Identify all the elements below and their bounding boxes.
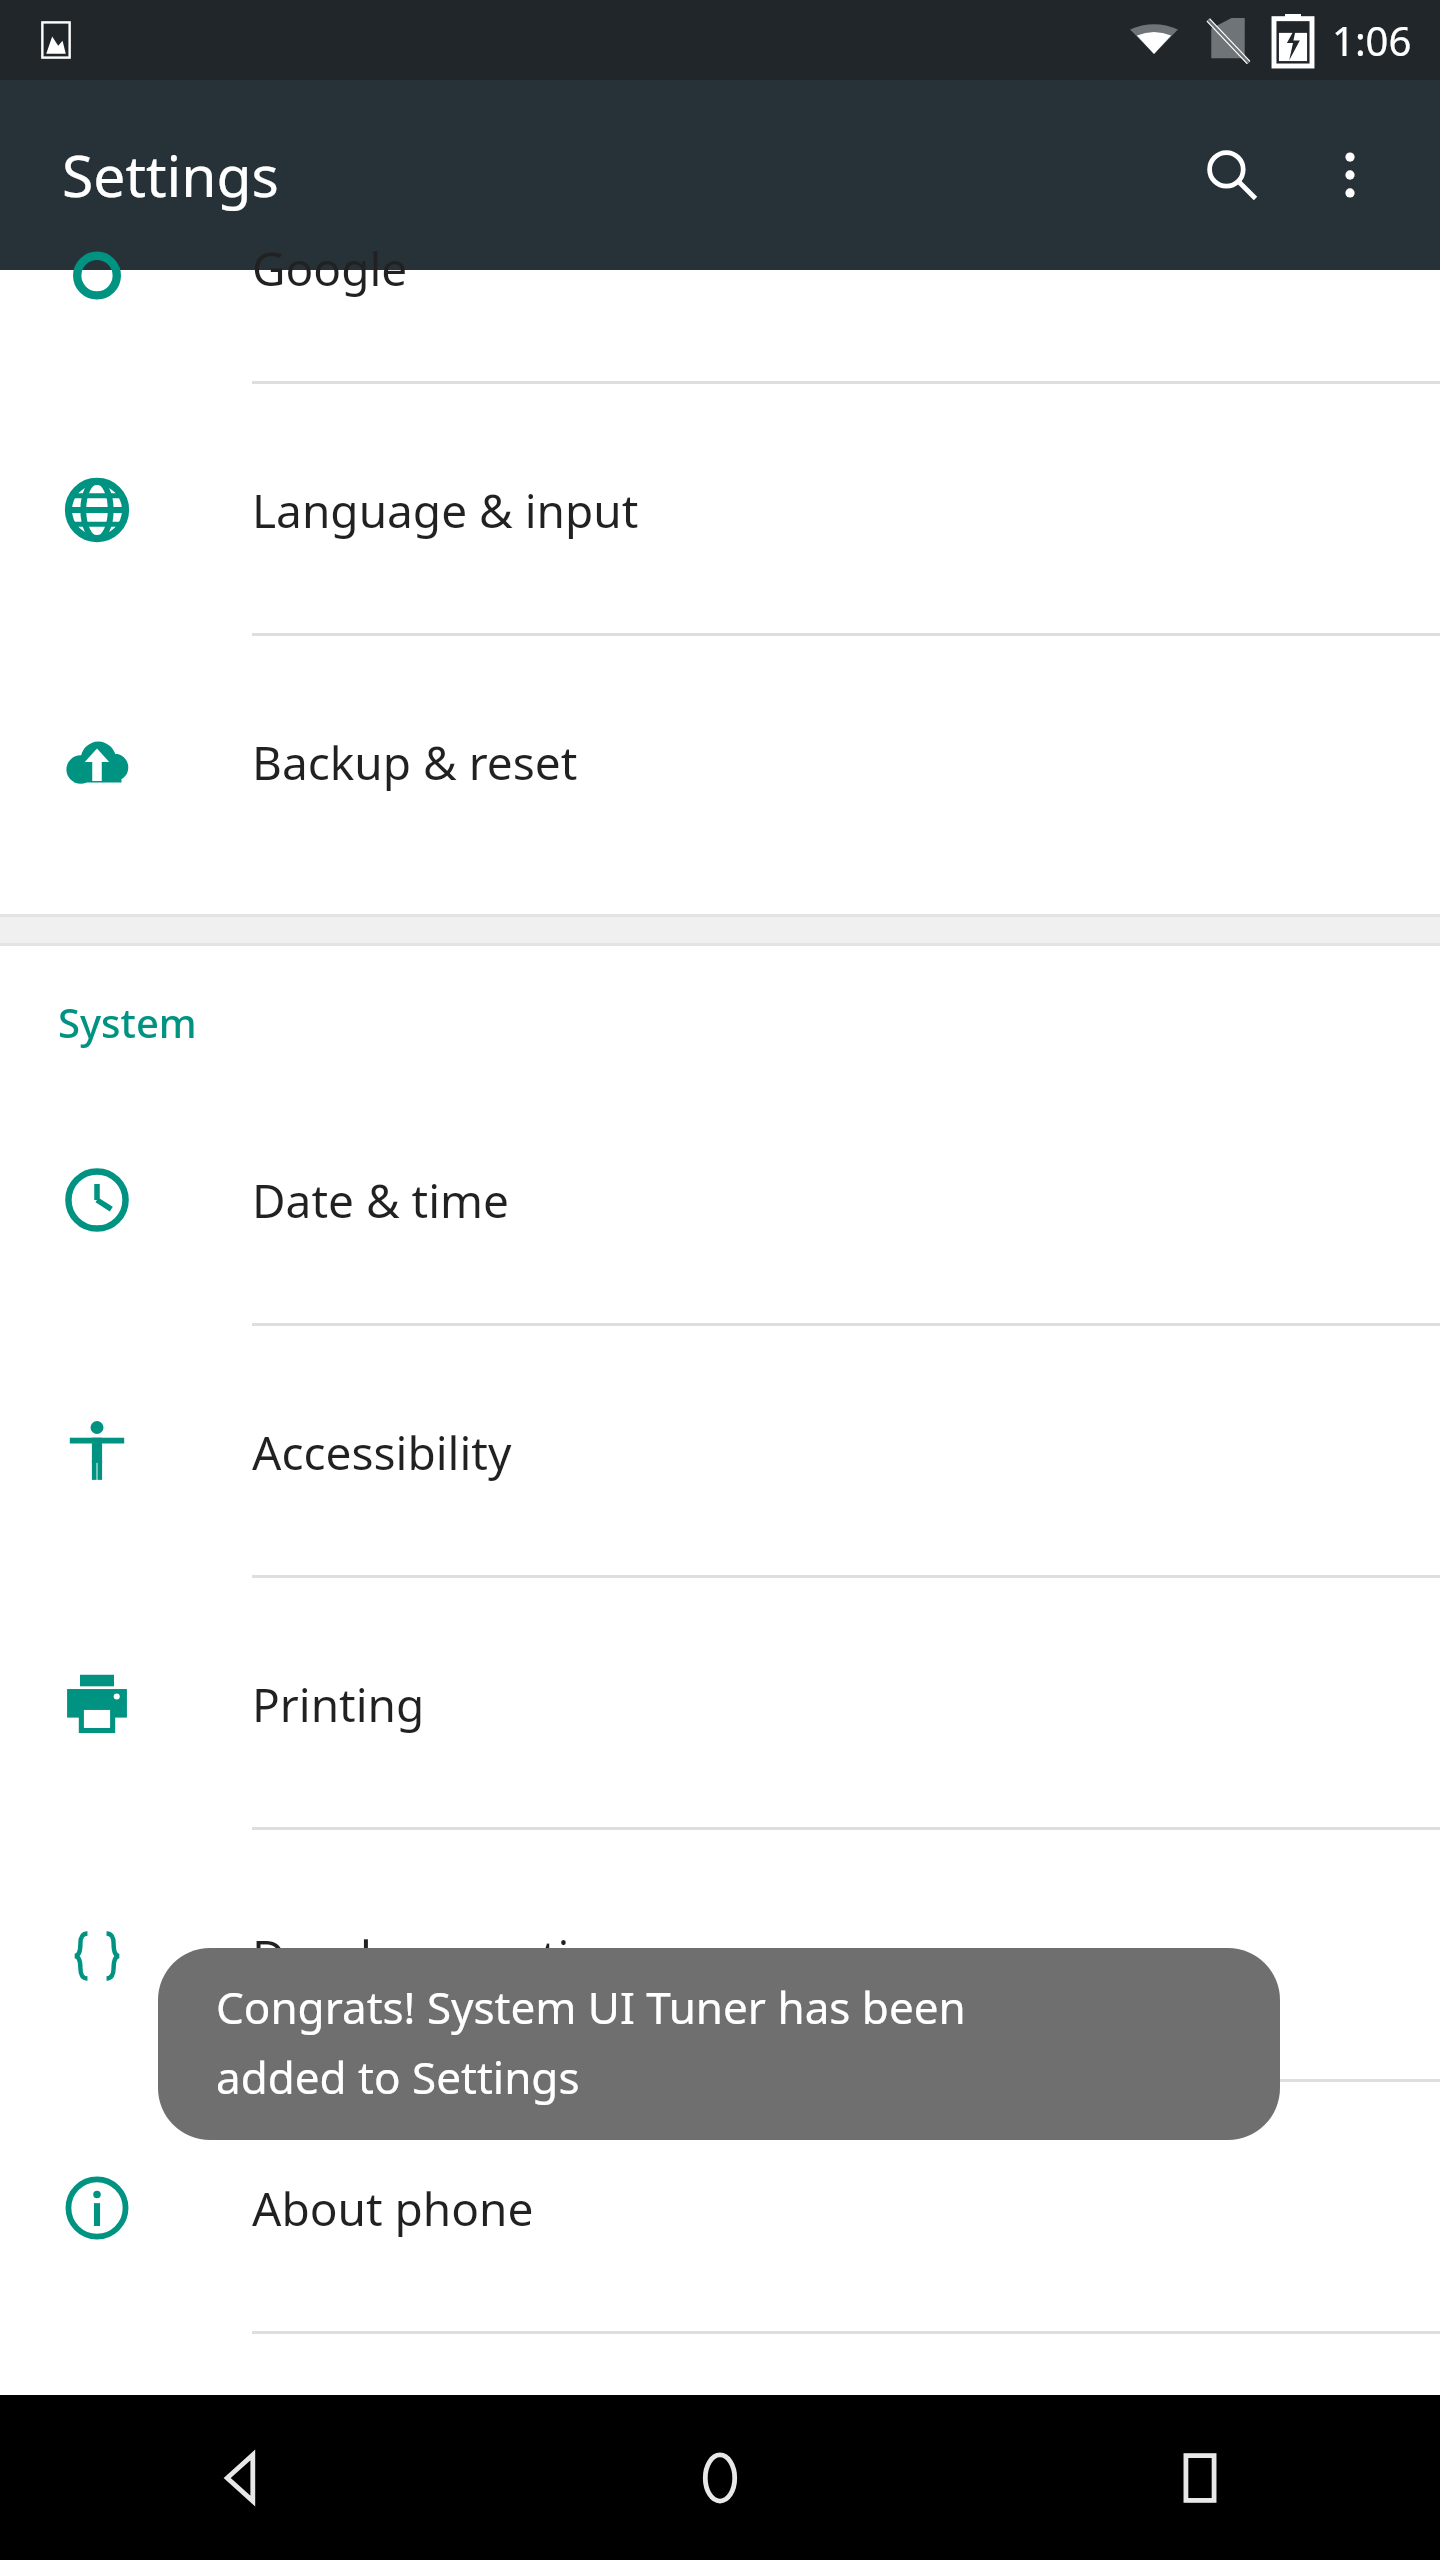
button[interactable]: Language & input — [0, 384, 1440, 636]
button[interactable]: Back — [0, 2395, 480, 2560]
button[interactable]: Developer options — [0, 1830, 1440, 2082]
button[interactable]: Home — [480, 2395, 960, 2560]
button[interactable]: Search — [1176, 119, 1288, 231]
staticText: About phone — [252, 2177, 534, 2240]
button[interactable]: More options — [1294, 119, 1406, 231]
staticText: Accessibility — [252, 1421, 512, 1484]
staticText: System — [58, 995, 197, 1049]
staticText: Date & time — [252, 1169, 509, 1232]
button[interactable]: Date & time — [0, 1074, 1440, 1326]
button[interactable]: Recent apps — [960, 2395, 1440, 2560]
staticText: Settings — [62, 136, 279, 214]
staticText: Backup & reset — [252, 731, 578, 794]
staticText: 1:06 — [1332, 13, 1412, 67]
staticText: Printing — [252, 1673, 425, 1736]
staticText: Developer options — [252, 1925, 648, 1988]
button[interactable]: About phone — [0, 2082, 1440, 2334]
staticText: Google — [252, 237, 408, 300]
staticText: Congrats! System UI Tuner has been — [216, 1977, 966, 2037]
button[interactable]: Accessibility — [0, 1326, 1440, 1578]
staticText: Language & input — [252, 479, 639, 542]
staticText: added to Settings — [216, 2047, 580, 2107]
button[interactable]: Printing — [0, 1578, 1440, 1830]
button[interactable]: Backup & reset — [0, 636, 1440, 888]
